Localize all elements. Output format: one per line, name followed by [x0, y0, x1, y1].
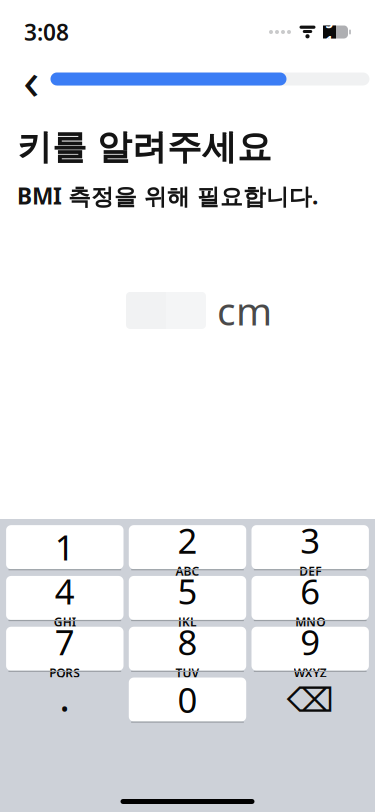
button[interactable]: 1 — [6, 525, 123, 570]
staticText: 6 — [300, 568, 320, 614]
staticText: JKL — [178, 614, 197, 630]
staticText: 0 — [177, 676, 197, 722]
button[interactable]: Decimal point — [6, 677, 123, 723]
staticText: PQRS — [49, 665, 80, 681]
staticText: 9 — [300, 619, 320, 665]
button[interactable]: 0 — [129, 677, 246, 723]
button[interactable]: 6 — [251, 576, 369, 621]
button[interactable]: 4 — [6, 576, 123, 621]
button[interactable]: 2 — [129, 525, 246, 570]
staticText: MNO — [295, 614, 325, 630]
button[interactable]: 9 — [251, 627, 369, 672]
staticText: 4 — [55, 568, 75, 614]
button[interactable]: Delete — [251, 677, 369, 723]
staticText: . — [59, 670, 70, 723]
staticText: 3 — [300, 517, 320, 563]
staticText: 51 — [325, 14, 333, 50]
staticText: ‹ — [23, 44, 40, 114]
staticText: 키를 알려주세요 — [17, 126, 272, 169]
staticText: WXYZ — [294, 665, 327, 681]
staticText: BMI 측정을 위해 필요합니다. — [17, 181, 318, 211]
button[interactable]: 8 — [129, 627, 246, 672]
staticText: cm — [217, 285, 272, 336]
staticText: GHI — [54, 614, 76, 630]
staticText: ABC — [175, 563, 199, 579]
button[interactable]: 5 — [129, 576, 246, 621]
staticText: TUV — [175, 665, 199, 681]
staticText: 2 — [177, 517, 197, 563]
button[interactable]: Back — [14, 57, 48, 101]
staticText: 1 — [55, 524, 75, 570]
button[interactable]: 7 — [6, 627, 123, 672]
staticText: 7 — [55, 619, 75, 665]
staticText: 5 — [177, 568, 197, 614]
staticText: 3:08 — [24, 17, 69, 47]
staticText: DEF — [299, 563, 321, 579]
staticText: ⌫ — [287, 681, 334, 719]
staticText: 8 — [177, 619, 197, 665]
button[interactable]: 3 — [251, 525, 369, 570]
